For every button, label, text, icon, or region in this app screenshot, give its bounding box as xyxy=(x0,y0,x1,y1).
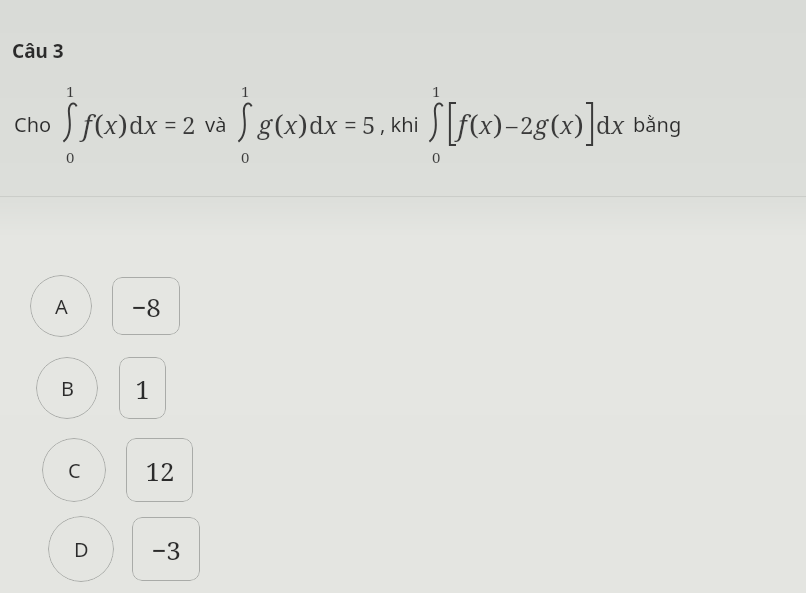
staticText: 5 xyxy=(362,108,376,141)
staticText: f xyxy=(458,106,467,143)
staticText: B xyxy=(61,375,74,402)
staticText: ) xyxy=(298,105,308,143)
staticText: A xyxy=(55,293,68,320)
button[interactable]: B xyxy=(36,357,98,419)
staticText: – xyxy=(506,109,518,140)
staticText: 0 xyxy=(66,147,75,167)
staticText: 1 xyxy=(241,81,250,101)
staticText: d xyxy=(129,108,144,141)
staticText: ) xyxy=(493,105,503,143)
staticText: Câu 3 xyxy=(12,38,64,64)
staticText: g xyxy=(258,107,272,141)
staticText: D xyxy=(74,536,89,563)
staticText: f xyxy=(83,106,92,143)
staticText: ) xyxy=(574,105,584,143)
staticText: x xyxy=(560,108,574,141)
staticText: ( xyxy=(94,105,104,143)
staticText: 0 xyxy=(241,147,250,167)
button[interactable]: Câu 3 xyxy=(12,38,64,64)
staticText: x xyxy=(324,108,338,141)
button[interactable]: −3 xyxy=(132,517,200,581)
staticText: x xyxy=(479,108,493,141)
button[interactable]: −8 xyxy=(112,277,180,335)
staticText: và xyxy=(205,111,227,138)
staticText: = xyxy=(164,109,177,140)
staticText: g xyxy=(534,107,548,141)
staticText: bằng xyxy=(633,111,682,138)
staticText: ( xyxy=(469,105,479,143)
button[interactable]: D xyxy=(48,516,200,582)
staticText: 1 xyxy=(432,81,441,101)
button[interactable]: D xyxy=(48,516,114,582)
button[interactable]: A xyxy=(30,275,180,337)
staticText: x xyxy=(104,108,118,141)
staticText: = xyxy=(344,109,357,140)
staticText: x xyxy=(284,108,298,141)
staticText: d xyxy=(309,108,324,141)
staticText: x xyxy=(611,108,625,141)
button[interactable]: A xyxy=(30,275,92,337)
staticText: d xyxy=(596,108,611,141)
staticText: −3 xyxy=(151,532,181,567)
staticText: 12 xyxy=(145,453,175,488)
button[interactable]: B xyxy=(36,357,166,419)
staticText: 0 xyxy=(432,147,441,167)
staticText: 2 xyxy=(520,108,534,141)
button[interactable]: 1 xyxy=(119,357,166,419)
staticText: ( xyxy=(274,105,284,143)
staticText: ( xyxy=(550,105,560,143)
button[interactable]: C xyxy=(42,438,193,502)
staticText: , khi xyxy=(380,111,419,138)
staticText: 2 xyxy=(182,108,196,141)
button[interactable]: C xyxy=(42,438,106,502)
button[interactable]: 12 xyxy=(126,438,193,502)
staticText: Cho xyxy=(14,111,52,138)
staticText: 1 xyxy=(66,81,75,101)
staticText: −8 xyxy=(131,289,161,324)
staticText: 1 xyxy=(135,371,150,406)
staticText: C xyxy=(68,457,81,484)
staticText: x xyxy=(144,108,158,141)
staticText: ) xyxy=(118,105,128,143)
